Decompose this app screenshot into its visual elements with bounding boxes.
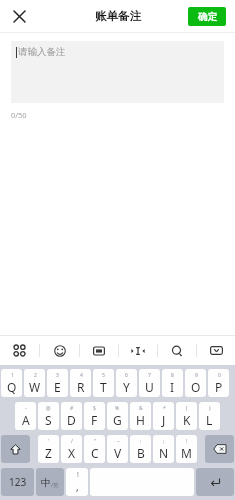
button[interactable]: Enter [196,468,234,496]
button[interactable]: ! [66,468,88,496]
staticText: X [68,445,76,461]
button[interactable]: / [61,435,82,463]
staticText: A [22,412,30,428]
staticText: W [29,379,41,395]
button[interactable]: Keyboard [80,336,118,365]
staticText: D [67,412,76,428]
button[interactable]: 1 [1,369,22,397]
staticText: E [54,379,61,395]
button[interactable]: Apps [0,336,39,365]
staticText: : [140,438,142,445]
staticText: M [181,445,192,461]
button[interactable]: $ [84,402,105,430]
staticText: 123 [9,475,27,489]
staticText: - [25,405,27,412]
staticText: 5 [102,372,105,379]
staticText: 2 [34,372,37,379]
button[interactable]: 8 [162,369,183,397]
button[interactable]: 4 [70,369,91,397]
staticText: J [162,412,166,428]
button[interactable]: " [84,435,105,463]
staticText: /英 [51,481,59,489]
button[interactable]: Close [7,4,31,28]
button[interactable]: Hide keyboard [197,336,235,365]
button[interactable]: & [130,402,151,430]
button[interactable]: ( [176,402,197,430]
staticText: ) [209,405,211,412]
staticText: ! [186,438,188,445]
staticText: / [71,438,73,445]
staticText: % [115,405,120,412]
staticText: ; [163,438,165,445]
staticText: 6 [125,372,128,379]
button[interactable]: ' [38,435,59,463]
staticText: Y [123,379,130,395]
button[interactable]: 6 [116,369,137,397]
staticText: " [94,438,97,445]
button[interactable]: @ [38,402,59,430]
button[interactable]: Backspace [205,435,234,463]
button[interactable]: # [61,402,82,430]
staticText: 4 [80,372,83,379]
staticText: N [159,445,169,461]
staticText: T [100,379,107,395]
staticText: G [113,412,122,428]
staticText: ! [77,470,79,480]
staticText: 请输入备注 [18,46,66,58]
button[interactable]: 2 [24,369,45,397]
button[interactable]: 中 [36,468,64,496]
button[interactable]: ! [176,435,197,463]
button[interactable]: % [107,402,128,430]
staticText: $ [93,405,96,412]
button[interactable]: 请输入备注 [11,41,224,103]
staticText: R [77,379,85,395]
staticText: 0/50 [11,110,27,120]
button[interactable]: 3 [47,369,68,397]
button[interactable]: Emoji [40,336,79,365]
staticText: Q [7,379,17,395]
button[interactable]: 7 [139,369,160,397]
staticText: 1 [11,372,14,379]
staticText: * [163,405,166,412]
staticText: H [136,412,145,428]
button[interactable]: 123 [1,468,34,496]
button[interactable]: ~ [107,435,128,463]
staticText: 9 [195,372,198,379]
staticText: Z [45,445,52,461]
staticText: U [145,379,154,395]
staticText: @ [46,405,51,412]
button[interactable]: 9 [185,369,206,397]
button[interactable]: Move cursor [119,336,157,365]
button[interactable]: 确定 [188,7,226,26]
staticText: ' [48,438,50,445]
button[interactable]: Search [158,336,196,365]
staticText: O [191,379,201,395]
staticText: 0 [218,372,221,379]
staticText: C [91,445,99,461]
staticText: ~ [117,438,120,445]
staticText: 8 [171,372,174,379]
staticText: L [206,412,213,428]
staticText: & [139,405,143,412]
staticText: K [183,412,191,428]
button[interactable]: * [153,402,174,430]
staticText: 3 [56,372,59,379]
button[interactable]: 5 [93,369,114,397]
button[interactable]: ) [199,402,220,430]
staticText: S [45,412,52,428]
staticText: 7 [148,372,151,379]
staticText: B [137,445,145,461]
button[interactable]: - [15,402,36,430]
staticText: 账单备注 [95,9,141,23]
staticText: I [170,379,175,395]
button[interactable]: : [130,435,151,463]
button[interactable]: Shift [1,435,30,463]
staticText: F [91,412,98,428]
button[interactable]: ; [153,435,174,463]
staticText: ( [186,405,188,412]
staticText: P [215,379,223,395]
button[interactable]: 0 [208,369,229,397]
staticText: 中 [41,476,51,489]
staticText: , [76,480,79,494]
